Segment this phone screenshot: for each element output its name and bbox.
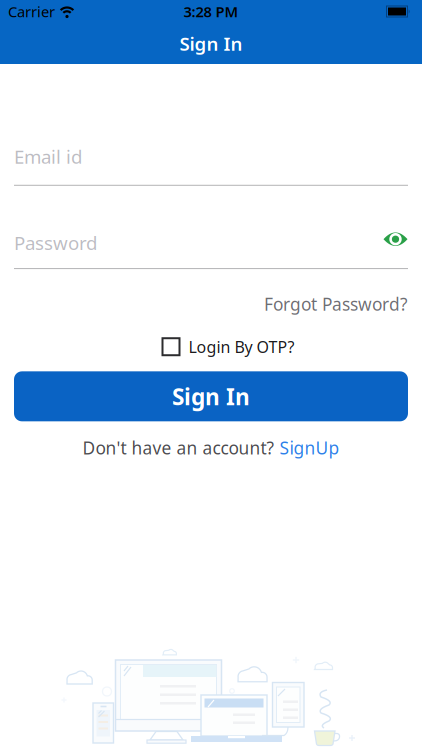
- button[interactable]: Don't have an account?: [82, 436, 339, 459]
- button[interactable]: Forgot Password?: [264, 293, 408, 316]
- button[interactable]: Sign In: [14, 371, 408, 421]
- staticText: Don't have an account?: [82, 436, 274, 459]
- button[interactable]: Email id: [14, 144, 408, 186]
- staticText: 3:28 PM: [183, 2, 238, 21]
- staticText: Carrier: [8, 2, 55, 21]
- staticText: Password: [14, 230, 97, 255]
- staticText: Sign In: [179, 31, 242, 56]
- staticText: Email id: [14, 144, 82, 169]
- button[interactable]: Login By OTP?: [161, 336, 294, 357]
- staticText: Forgot Password?: [264, 293, 408, 316]
- staticText: Login By OTP?: [188, 336, 294, 357]
- button[interactable]: Password: [14, 230, 408, 269]
- staticText: Sign In: [172, 381, 250, 411]
- staticText: SignUp: [279, 436, 339, 459]
